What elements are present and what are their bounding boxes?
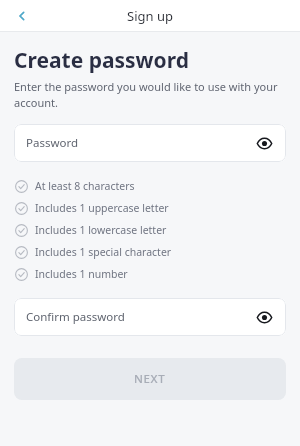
button[interactable]: Show password [254, 133, 274, 153]
staticText: Includes 1 lowercase letter [35, 223, 167, 237]
staticText: Includes 1 uppercase letter [35, 201, 169, 215]
button[interactable]: Back [6, 0, 38, 32]
button[interactable]: Confirm password [14, 298, 286, 336]
button[interactable]: Show password [254, 307, 274, 327]
staticText: Enter the password you would like to use… [14, 79, 286, 110]
staticText: Includes 1 number [35, 267, 128, 281]
staticText: Create password [14, 46, 189, 75]
staticText: Sign up [127, 7, 173, 25]
staticText: Confirm password [26, 309, 254, 325]
button[interactable]: Password [14, 124, 286, 162]
staticText: NEXT [134, 371, 166, 387]
button[interactable]: NEXT [14, 358, 286, 400]
staticText: Password [26, 135, 254, 151]
staticText: Includes 1 special character [35, 245, 172, 259]
staticText: At least 8 characters [35, 179, 135, 193]
